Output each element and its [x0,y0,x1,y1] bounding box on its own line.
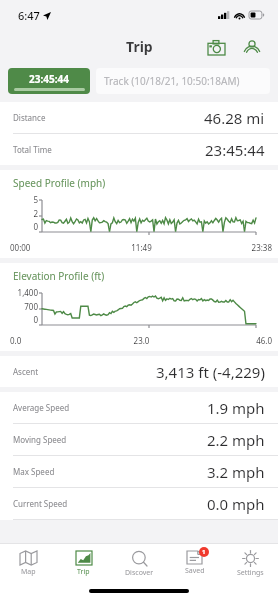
staticText: Moving Speed [13,434,67,445]
staticText: Distance [13,112,46,123]
staticText: 3,413 ft (-4,229) [156,362,265,382]
staticText: Settings [237,568,264,578]
staticText: Discover [125,568,154,578]
button[interactable]: Average Speed [0,392,278,424]
staticText: 1 [202,548,206,556]
staticText: 23.0 [98,335,185,346]
button[interactable]: Moving Speed [0,424,278,456]
button[interactable]: Profile [240,35,264,59]
staticText: 46.28 mi [204,108,265,128]
button[interactable]: Trip [56,544,111,582]
staticText: 5 [33,194,38,205]
staticText: 00:00 [10,242,98,253]
button[interactable]: Distance [0,102,278,134]
staticText: 0 [33,221,38,232]
staticText: 0 [33,314,38,325]
button[interactable]: Settings [223,544,278,582]
staticText: 1.9 mph [207,398,265,418]
button[interactable]: Current Speed [0,488,278,520]
button[interactable]: Ascent [0,356,278,387]
button[interactable]: 23:45:44 [8,68,90,94]
button[interactable]: Map [1,544,56,582]
button[interactable]: 1 [167,544,222,582]
staticText: 1,400 [17,287,38,298]
staticText: Map [21,567,36,577]
staticText: 23:45:44 [205,140,265,160]
staticText: Trip [77,567,90,577]
staticText: 6:47 [18,8,40,23]
staticText: 23:38 [185,242,272,253]
staticText: Trip [126,37,153,56]
staticText: Max Speed [13,466,55,477]
staticText: 46.0 [185,335,272,346]
staticText: Saved [185,566,205,576]
staticText: Elevation Profile (ft) [13,269,105,283]
staticText: Average Speed [13,402,70,413]
staticText: 2 [33,208,38,219]
staticText: 11:49 [98,242,185,253]
staticText: 23:45:44 [29,72,69,86]
staticText: Ascent [13,366,39,377]
staticText: 0.0 mph [207,494,265,514]
button[interactable]: Discover [112,544,167,582]
button[interactable]: Track (10/18/21, 10:50:18AM) [96,68,270,94]
button[interactable]: Max Speed [0,456,278,488]
staticText: 0.0 [10,335,98,346]
staticText: 3.2 mph [207,462,265,482]
button[interactable]: Total Time [0,134,278,165]
staticText: 700 [24,301,38,312]
staticText: Speed Profile (mph) [13,176,106,190]
button[interactable]: Camera [204,35,228,59]
staticText: Track (10/18/21, 10:50:18AM) [104,74,240,88]
staticText: 2.2 mph [207,430,265,450]
staticText: Current Speed [13,498,68,509]
staticText: Total Time [13,144,52,155]
